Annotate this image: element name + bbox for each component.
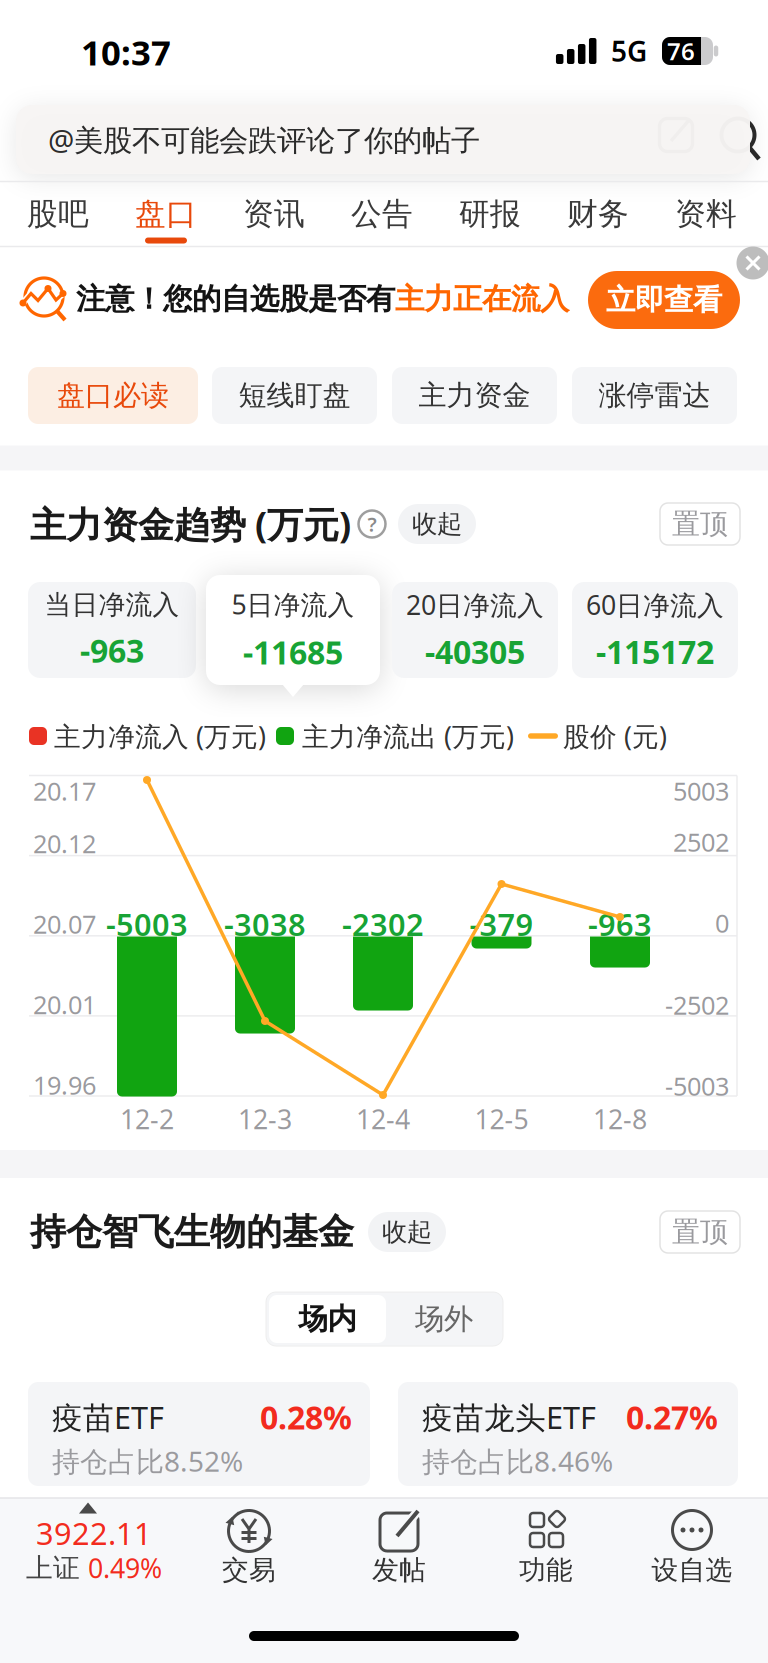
staticText: 20.01	[33, 988, 96, 1021]
staticText: -2302	[342, 904, 424, 944]
staticText: 设自选	[651, 1554, 732, 1586]
button[interactable]: 研报	[440, 183, 540, 245]
staticText: 12-3	[238, 1101, 292, 1137]
staticText: 12-8	[593, 1101, 647, 1137]
button[interactable]: 说明	[355, 504, 389, 544]
button[interactable]: 盘口必读	[28, 367, 198, 424]
staticText: 5003	[673, 774, 729, 808]
staticText: 0.49%	[88, 1550, 162, 1586]
staticText: 0.28%	[260, 1396, 352, 1438]
staticText: 60日净流入	[586, 587, 724, 622]
button[interactable]: 3922.11	[14, 1490, 174, 1602]
button[interactable]: 置顶	[660, 1211, 740, 1253]
button[interactable]: 主力资金	[392, 367, 557, 424]
button[interactable]: 关闭	[736, 246, 768, 279]
staticText: -3038	[224, 904, 306, 944]
staticText: 涨停雷达	[598, 378, 710, 413]
button[interactable]: 搜索	[713, 103, 768, 167]
button[interactable]: @美股不可能会跌评论了你的帖子	[16, 105, 750, 174]
staticText: 资料	[675, 195, 737, 233]
staticText: 上证	[26, 1552, 80, 1584]
button[interactable]: 股吧	[8, 183, 108, 245]
staticText: 持仓占比8.46%	[422, 1442, 613, 1480]
button[interactable]: 收起	[368, 1212, 446, 1252]
staticText: 交易	[222, 1554, 276, 1586]
staticText: 置顶	[672, 507, 728, 541]
staticText: 20.17	[33, 774, 96, 808]
button[interactable]: 短线盯盘	[212, 367, 377, 424]
staticText: 20.12	[33, 827, 96, 860]
staticText: 疫苗龙头ETF	[422, 1397, 596, 1437]
staticText: 注意！您的自选股是否有	[76, 281, 395, 317]
staticText: 当日净流入	[44, 588, 179, 621]
staticText: 场外	[415, 1301, 473, 1337]
button[interactable]: 功能	[486, 1480, 606, 1600]
staticText: 资讯	[243, 195, 305, 233]
button[interactable]: 场内	[269, 1295, 386, 1343]
staticText: 3922.11	[36, 1513, 152, 1553]
staticText: 76	[667, 35, 695, 67]
staticText: 财务	[567, 195, 629, 233]
button[interactable]: 20日净流入	[392, 582, 558, 678]
staticText: 2502	[673, 825, 729, 859]
button[interactable]: 疫苗ETF	[28, 1382, 370, 1486]
staticText: 场内	[298, 1301, 356, 1337]
staticText: 置顶	[672, 1215, 728, 1249]
staticText: @美股不可能会跌评论了你的帖子	[48, 120, 480, 159]
staticText: 0	[715, 906, 729, 940]
button[interactable]: 场外	[389, 1295, 499, 1343]
staticText: 主力资金趋势 (万元)	[30, 500, 351, 548]
staticText: 短线盯盘	[238, 378, 350, 413]
staticText: -5003	[665, 1069, 729, 1103]
staticText: 研报	[459, 195, 521, 233]
staticText: -379	[469, 904, 533, 944]
staticText: -11685	[243, 631, 343, 673]
staticText: 盘口	[135, 195, 197, 233]
staticText: 0.27%	[626, 1396, 718, 1438]
button[interactable]: 资料	[656, 183, 756, 245]
staticText: 收起	[382, 1216, 432, 1247]
staticText: 5G	[611, 32, 647, 70]
staticText: 20日净流入	[406, 587, 544, 622]
staticText: 10:37	[81, 29, 171, 75]
staticText: 疫苗ETF	[52, 1397, 164, 1437]
staticText: ?	[367, 511, 376, 537]
staticText: 持仓占比8.52%	[52, 1442, 243, 1480]
button[interactable]: 涨停雷达	[572, 367, 737, 424]
staticText: 12-5	[474, 1101, 528, 1137]
staticText: 12-4	[356, 1101, 410, 1137]
button[interactable]: 当日净流入	[28, 582, 196, 678]
staticText: -5003	[106, 904, 188, 944]
button[interactable]: 盘口	[116, 183, 216, 245]
staticText: -963	[588, 904, 652, 944]
button[interactable]: 收起	[398, 504, 476, 544]
button[interactable]: 交易	[189, 1480, 309, 1600]
staticText: 持仓智飞生物的基金	[30, 1210, 354, 1254]
button[interactable]: 公告	[332, 183, 432, 245]
staticText: -40305	[425, 630, 525, 673]
staticText: 20.07	[33, 907, 96, 941]
button[interactable]: 60日净流入	[572, 582, 738, 678]
button[interactable]: 置顶	[660, 503, 740, 545]
staticText: -963	[80, 629, 144, 672]
staticText: 主力净流入 (万元)	[54, 718, 266, 754]
button[interactable]: 立即查看	[588, 271, 740, 329]
staticText: 19.96	[33, 1068, 96, 1102]
button[interactable]: 疫苗龙头ETF	[398, 1382, 738, 1486]
staticText: 12-2	[120, 1101, 174, 1137]
staticText: -2502	[665, 988, 729, 1022]
staticText: 股价 (元)	[563, 718, 667, 754]
staticText: 主力资金	[418, 378, 530, 413]
button[interactable]: 5日净流入	[206, 575, 380, 685]
button[interactable]: 资讯	[224, 183, 324, 245]
staticText: 盘口必读	[57, 378, 169, 413]
button[interactable]: 发帖	[339, 1480, 459, 1600]
staticText: 立即查看	[606, 282, 722, 318]
staticText: 主力净流出 (万元)	[302, 718, 514, 754]
staticText: 公告	[351, 195, 413, 233]
staticText: -115172	[596, 630, 714, 673]
button[interactable]: 财务	[548, 183, 648, 245]
button[interactable]: 设自选	[632, 1480, 752, 1600]
staticText: 收起	[412, 508, 462, 539]
staticText: 发帖	[372, 1554, 426, 1586]
